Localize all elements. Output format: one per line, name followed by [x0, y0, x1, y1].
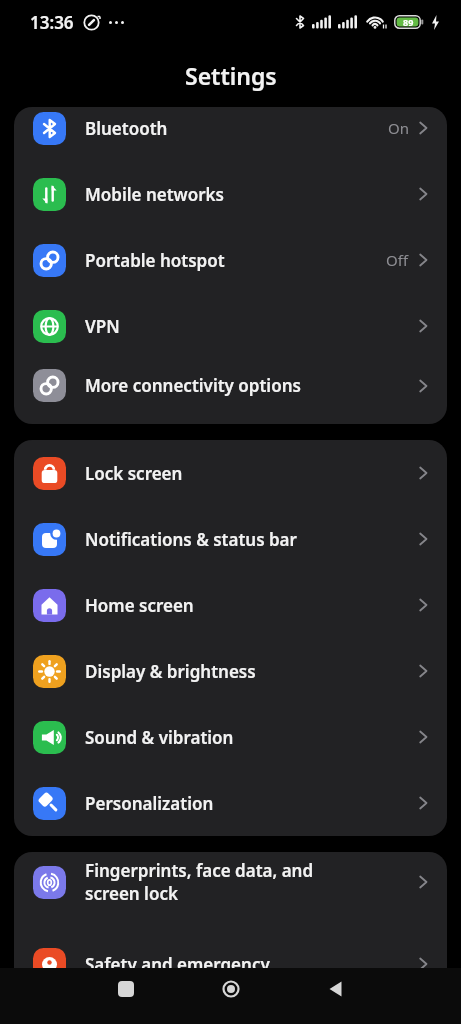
staticText: Mobile networks [85, 183, 224, 206]
staticText: 13:36 [30, 11, 74, 34]
staticText: Sound & vibration [85, 726, 234, 749]
button[interactable]: Notifications & status bar [14, 506, 447, 572]
staticText: VPN [85, 315, 120, 338]
button[interactable] [222, 980, 240, 998]
button[interactable]: VPN [14, 293, 447, 359]
staticText: Bluetooth [85, 117, 168, 140]
staticText: Settings [185, 60, 277, 91]
button[interactable]: Fingerprints, face data, and screen lock [14, 852, 447, 912]
staticText: On [388, 118, 409, 138]
button[interactable] [117, 980, 135, 998]
button[interactable]: Sound & vibration [14, 704, 447, 770]
button[interactable]: Home screen [14, 572, 447, 638]
button[interactable]: Mobile networks [14, 161, 447, 227]
staticText: Fingerprints, face data, and screen lock [85, 859, 314, 905]
button[interactable]: More connectivity options [14, 359, 447, 412]
button[interactable]: Personalization [14, 770, 447, 836]
staticText: Personalization [85, 792, 214, 815]
button[interactable]: Safety and emergency [14, 931, 447, 997]
button[interactable]: Lock screen [14, 440, 447, 506]
button[interactable] [327, 980, 345, 998]
staticText: Notifications & status bar [85, 528, 297, 551]
button[interactable]: Portable hotspot [14, 227, 447, 293]
staticText: Home screen [85, 594, 194, 617]
staticText: Display & brightness [85, 660, 256, 683]
button[interactable]: Display & brightness [14, 638, 447, 704]
staticText: Safety and emergency [85, 953, 270, 976]
staticText: Portable hotspot [85, 249, 225, 272]
staticText: More connectivity options [85, 374, 301, 397]
button[interactable]: Bluetooth [14, 107, 447, 161]
staticText: Off [386, 250, 409, 270]
staticText: Lock screen [85, 462, 183, 485]
staticText: 89 [403, 16, 414, 28]
